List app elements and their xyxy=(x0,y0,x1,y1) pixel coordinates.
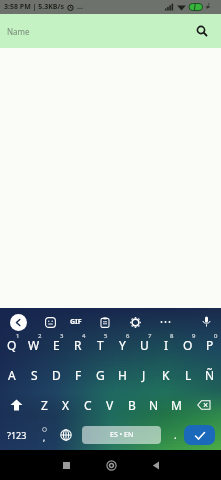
button[interactable] xyxy=(155,312,175,332)
staticText: 8 xyxy=(170,332,174,340)
button[interactable] xyxy=(187,390,221,420)
button[interactable]: R xyxy=(67,330,89,360)
staticText: 3 xyxy=(60,332,64,340)
staticText: Q xyxy=(7,337,17,353)
button[interactable]: G xyxy=(89,360,111,390)
button[interactable]: U xyxy=(133,330,155,360)
button[interactable]: A xyxy=(0,360,23,390)
button[interactable]: C xyxy=(77,390,99,420)
button[interactable] xyxy=(125,312,145,332)
staticText: U xyxy=(140,337,149,353)
staticText: 1 xyxy=(16,332,20,340)
button[interactable] xyxy=(95,312,115,332)
button[interactable]: I xyxy=(155,330,177,360)
button[interactable]: S xyxy=(23,360,45,390)
button[interactable]: X xyxy=(55,390,77,420)
button[interactable]: Name xyxy=(0,14,221,48)
staticText: 4 xyxy=(82,332,86,340)
staticText: M xyxy=(171,397,182,413)
staticText: L xyxy=(185,367,192,383)
button[interactable] xyxy=(55,420,77,450)
staticText: 5 xyxy=(104,332,108,340)
button[interactable]: Y xyxy=(111,330,133,360)
staticText: 7 xyxy=(148,332,152,340)
button[interactable]: J xyxy=(133,360,155,390)
button[interactable] xyxy=(184,420,221,450)
staticText: T xyxy=(97,337,104,353)
button[interactable] xyxy=(149,458,163,472)
button[interactable]: E xyxy=(45,330,67,360)
button[interactable]: P xyxy=(199,330,221,360)
staticText: P xyxy=(206,337,214,353)
button[interactable] xyxy=(104,458,118,472)
button[interactable]: ES • EN xyxy=(77,420,166,450)
button[interactable]: W xyxy=(23,330,45,360)
button[interactable]: Ñ xyxy=(199,360,221,390)
staticText: … xyxy=(77,2,83,12)
staticText: N xyxy=(149,397,159,413)
staticText: . xyxy=(174,428,177,442)
staticText: F xyxy=(75,367,82,383)
staticText: Z xyxy=(41,397,48,413)
staticText: 3:58 PM | 5.3KB/s xyxy=(4,2,64,12)
staticText: 9 xyxy=(192,332,196,340)
staticText: ≠ xyxy=(206,2,211,12)
button[interactable]: K xyxy=(155,360,177,390)
staticText: 2 xyxy=(38,332,42,340)
staticText: Ñ xyxy=(205,367,215,383)
button[interactable]: N xyxy=(143,390,165,420)
button[interactable]: L xyxy=(177,360,199,390)
staticText: ?123 xyxy=(7,429,27,441)
button[interactable]: V xyxy=(99,390,121,420)
staticText: I xyxy=(164,337,169,353)
button[interactable] xyxy=(40,312,60,332)
staticText: 0 xyxy=(214,332,218,340)
staticText: K xyxy=(162,367,170,383)
button[interactable]: B xyxy=(121,390,143,420)
staticText: J xyxy=(142,367,146,383)
button[interactable]: GIF xyxy=(66,312,86,332)
button[interactable]: T xyxy=(89,330,111,360)
staticText: E xyxy=(53,337,60,353)
button[interactable]: H xyxy=(111,360,133,390)
button[interactable]: Q xyxy=(0,330,23,360)
staticText: O xyxy=(183,337,193,353)
button[interactable]: ?123 xyxy=(0,420,33,450)
staticText: G xyxy=(96,367,105,383)
button[interactable] xyxy=(10,314,27,331)
staticText: D xyxy=(52,367,61,383)
staticText: 6 xyxy=(126,332,130,340)
button[interactable]: D xyxy=(45,360,67,390)
staticText: Name xyxy=(7,26,30,37)
button[interactable] xyxy=(0,390,33,420)
staticText: S xyxy=(31,367,38,383)
staticText: B xyxy=(128,397,136,413)
staticText: X xyxy=(62,397,70,413)
staticText: GIF xyxy=(70,317,82,327)
button[interactable] xyxy=(197,313,215,331)
button[interactable]: F xyxy=(67,360,89,390)
staticText: , xyxy=(43,432,46,443)
staticText: ES • EN xyxy=(110,430,134,440)
button[interactable]: , xyxy=(33,420,55,450)
button[interactable]: O xyxy=(177,330,199,360)
staticText: R xyxy=(74,337,82,353)
staticText: A xyxy=(8,367,16,383)
staticText: H xyxy=(118,367,127,383)
staticText: W xyxy=(28,337,40,353)
button[interactable]: Z xyxy=(33,390,55,420)
staticText: Y xyxy=(119,337,126,353)
button[interactable]: M xyxy=(165,390,187,420)
button[interactable]: . xyxy=(166,420,184,450)
button[interactable] xyxy=(59,458,73,472)
staticText: C xyxy=(84,397,92,413)
staticText: V xyxy=(106,397,114,413)
